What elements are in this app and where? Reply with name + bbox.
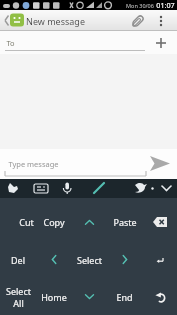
staticText: 01:07	[156, 0, 175, 10]
button[interactable]	[36, 241, 72, 278]
staticText: Cut	[19, 216, 34, 228]
button[interactable]	[142, 241, 177, 278]
button[interactable]	[152, 10, 170, 31]
button[interactable]: End	[107, 278, 142, 315]
button[interactable]: Del	[0, 241, 36, 278]
button[interactable]	[148, 152, 172, 176]
button[interactable]: To	[0, 31, 145, 54]
button[interactable]	[58, 179, 87, 198]
staticText: End	[116, 291, 133, 303]
button[interactable]	[0, 179, 29, 198]
staticText: Copy	[43, 216, 65, 228]
staticText: New message	[26, 15, 85, 27]
staticText: Mon 30/06	[126, 2, 154, 9]
button[interactable]	[29, 179, 58, 198]
button[interactable]	[117, 179, 147, 198]
button[interactable]	[107, 241, 142, 278]
button[interactable]: Select	[0, 278, 36, 315]
staticText: Select	[77, 254, 102, 266]
staticText: All	[13, 297, 24, 309]
button[interactable]: Select	[72, 241, 107, 278]
button[interactable]: Paste	[107, 203, 142, 241]
button[interactable]	[72, 278, 107, 315]
button[interactable]: Home	[36, 278, 72, 315]
button[interactable]	[142, 278, 177, 315]
button[interactable]	[145, 31, 177, 54]
staticText: Del	[11, 254, 25, 266]
button[interactable]	[0, 10, 26, 31]
button[interactable]	[124, 10, 152, 31]
staticText: Paste	[113, 216, 137, 228]
button[interactable]	[147, 179, 177, 198]
staticText: Type message	[8, 159, 59, 169]
staticText: Select	[6, 285, 31, 297]
staticText: Home	[41, 291, 67, 303]
button[interactable]	[87, 179, 117, 198]
button[interactable]: Copy	[36, 203, 72, 241]
button[interactable]: Cut	[0, 203, 36, 241]
button[interactable]	[72, 203, 107, 241]
staticText: To	[6, 38, 15, 48]
button[interactable]	[142, 203, 177, 241]
button[interactable]: Type message	[8, 159, 59, 169]
